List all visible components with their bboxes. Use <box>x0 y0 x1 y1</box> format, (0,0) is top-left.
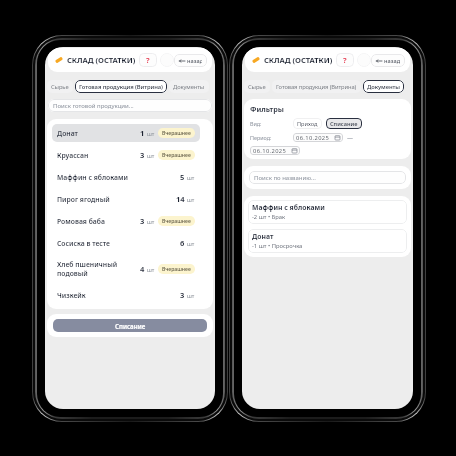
button[interactable]: Документы <box>169 80 209 93</box>
staticText: назад <box>384 57 400 65</box>
staticText: шт <box>187 174 195 181</box>
button[interactable]: Донат <box>248 229 407 253</box>
button[interactable]: Help <box>336 53 354 67</box>
staticText: Документы <box>173 83 205 91</box>
staticText: шт <box>187 292 195 299</box>
staticText: -2 шт • Брак <box>252 213 286 221</box>
button[interactable]: назад <box>174 54 207 67</box>
button[interactable]: Маффин с яблоками <box>248 200 407 224</box>
staticText: Списание <box>330 120 358 128</box>
button[interactable]: Пирог ягодный <box>52 190 200 208</box>
staticText: Вчерашнее <box>162 152 191 159</box>
staticText: 1 <box>140 128 145 138</box>
staticText: СКЛАД (ОСТАТКИ) <box>264 55 333 65</box>
staticText: 4 <box>140 264 145 274</box>
button[interactable]: 06.10.2025 <box>293 133 343 142</box>
button[interactable]: Маффин с яблоками <box>52 168 200 186</box>
staticText: Пирог ягодный <box>57 195 176 204</box>
staticText: Сырье <box>51 83 69 91</box>
staticText: Чизкейк <box>57 291 180 300</box>
staticText: 3 <box>140 216 145 226</box>
staticText: Период: <box>250 134 272 141</box>
staticText: ? <box>343 55 347 65</box>
button[interactable]: Help <box>139 53 157 67</box>
button[interactable]: Круассан <box>52 146 200 164</box>
staticText: Донат <box>252 232 274 241</box>
staticText: -1 шт • Просрочка <box>252 242 303 250</box>
staticText: шт <box>147 152 155 159</box>
button[interactable]: Списание <box>326 118 362 129</box>
staticText: СКЛАД (ОСТАТКИ) <box>67 55 136 65</box>
staticText: Приход <box>297 120 318 128</box>
button[interactable]: Сырье <box>47 80 73 93</box>
staticText: 14 <box>176 194 185 204</box>
staticText: Поиск по названию... <box>254 174 316 182</box>
staticText: Маффин с яблоками <box>57 173 180 182</box>
staticText: Ромовая баба <box>57 217 140 226</box>
staticText: Фильтры <box>250 104 284 114</box>
button[interactable]: Приход <box>293 118 322 129</box>
staticText: Вчерашнее <box>162 130 191 137</box>
staticText: Списание <box>115 322 146 330</box>
staticText: Донат <box>57 129 140 138</box>
staticText: Вчерашнее <box>162 218 191 225</box>
button[interactable]: Готовая продукция (Витрина) <box>75 80 167 93</box>
staticText: 06.10.2025 <box>253 147 287 155</box>
staticText: Круассан <box>57 151 140 160</box>
staticText: назад <box>187 57 202 65</box>
staticText: Вид: <box>250 120 262 127</box>
button[interactable]: Ромовая баба <box>52 212 200 230</box>
staticText: шт <box>147 266 155 273</box>
staticText: Готовая продукция (Витрина) <box>276 83 357 91</box>
button[interactable]: Готовая продукция (Витрина) <box>272 80 361 93</box>
button[interactable]: Донат <box>52 124 200 142</box>
button[interactable]: Сырье <box>244 80 270 93</box>
staticText: 3 <box>180 290 185 300</box>
staticText: Хлеб пшеничный подовый <box>57 260 140 278</box>
button[interactable]: Чизкейк <box>52 286 200 304</box>
button[interactable]: назад <box>371 54 405 67</box>
staticText: Поиск готовой продукции... <box>53 102 134 110</box>
button[interactable]: 06.10.2025 <box>250 146 300 155</box>
staticText: 5 <box>180 172 185 182</box>
staticText: Сосиска в тесте <box>57 239 180 248</box>
staticText: шт <box>187 240 195 247</box>
staticText: шт <box>187 196 195 203</box>
button[interactable]: Документы <box>363 80 404 93</box>
button[interactable]: Хлеб пшеничный подовый <box>52 256 200 282</box>
staticText: Маффин с яблоками <box>252 203 325 212</box>
staticText: шт <box>147 130 155 137</box>
staticText: Готовая продукция (Витрина) <box>79 83 163 91</box>
staticText: ? <box>146 55 150 65</box>
staticText: Сырье <box>248 83 266 91</box>
button[interactable]: Поиск готовой продукции... <box>48 99 212 112</box>
button[interactable]: Списание <box>53 319 207 332</box>
staticText: Документы <box>367 83 400 91</box>
staticText: 06.10.2025 <box>296 134 330 142</box>
staticText: Вчерашнее <box>162 266 191 273</box>
staticText: 6 <box>180 238 185 248</box>
button[interactable]: Поиск по названию... <box>249 171 406 184</box>
staticText: 3 <box>140 150 145 160</box>
staticText: — <box>347 134 354 142</box>
button[interactable]: Сосиска в тесте <box>52 234 200 252</box>
staticText: шт <box>147 218 155 225</box>
